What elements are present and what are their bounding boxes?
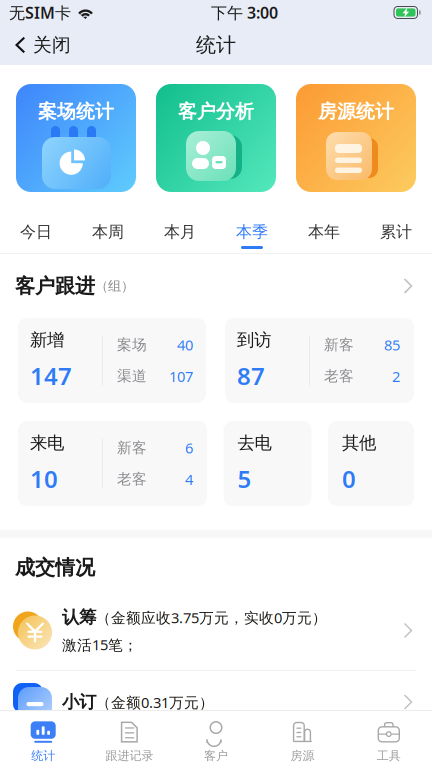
staticText: 107 — [169, 366, 193, 386]
staticText: 147 — [30, 360, 72, 392]
staticText: （金额0.31万元） — [96, 692, 214, 712]
button[interactable]: 本月 — [144, 205, 216, 253]
staticText: 10 — [30, 463, 58, 495]
staticText: 统计 — [196, 33, 236, 57]
button[interactable]: 客户跟进 — [0, 254, 432, 318]
button[interactable]: 认筹 — [0, 591, 432, 670]
staticText: 2 — [392, 366, 400, 386]
staticText: 客户跟进 — [15, 274, 95, 298]
button[interactable]: 本季 — [216, 205, 288, 253]
staticText: 本周 — [92, 222, 124, 242]
staticText: 房源统计 — [318, 100, 394, 123]
button[interactable]: 房源统计 — [296, 84, 416, 192]
button[interactable]: 案场统计 — [16, 84, 136, 192]
staticText: 87 — [237, 360, 265, 392]
staticText: 6 — [185, 438, 193, 457]
staticText: 本年 — [308, 222, 340, 242]
button[interactable]: 工具 — [346, 711, 432, 768]
button[interactable]: 今日 — [0, 205, 72, 253]
staticText: 今日 — [20, 222, 52, 242]
button[interactable]: 其他 — [328, 421, 414, 506]
staticText: 40 — [177, 335, 193, 354]
button[interactable]: 去电 — [223, 421, 311, 506]
button[interactable]: 累计 — [360, 205, 432, 253]
staticText: 认筹 — [62, 607, 96, 628]
button[interactable]: 来电 — [18, 421, 207, 506]
staticText: 其他 — [342, 432, 376, 454]
button[interactable]: 客户分析 — [156, 84, 276, 192]
button[interactable]: 本周 — [72, 205, 144, 253]
staticText: 成交情况 — [15, 555, 95, 580]
staticText: 激活15笔； — [62, 635, 138, 654]
staticText: 来电 — [30, 432, 64, 454]
staticText: 渠道 — [117, 367, 147, 385]
staticText: 85 — [384, 335, 400, 354]
button[interactable]: 统计 — [0, 711, 86, 768]
staticText: 房源 — [290, 748, 314, 763]
staticText: 5 — [237, 463, 251, 495]
button[interactable]: 关闭 — [0, 26, 71, 63]
staticText: （组） — [95, 278, 134, 294]
button[interactable]: 小订 — [0, 671, 432, 733]
button[interactable]: 房源 — [259, 711, 346, 768]
staticText: 案场统计 — [38, 100, 114, 123]
staticText: 新客 — [117, 439, 147, 457]
staticText: 工具 — [377, 748, 401, 763]
staticText: 关闭 — [33, 33, 71, 56]
staticText: 新增 — [30, 329, 64, 351]
button[interactable]: 本年 — [288, 205, 360, 253]
staticText: 去电 — [237, 432, 271, 454]
staticText: 客户分析 — [178, 100, 254, 123]
button[interactable]: 到访 — [225, 318, 414, 403]
staticText: 到访 — [237, 329, 271, 351]
button[interactable]: 客户 — [173, 711, 259, 768]
staticText: 累计 — [380, 222, 412, 242]
staticText: 老客 — [117, 470, 147, 488]
button[interactable]: 跟进记录 — [86, 711, 173, 768]
staticText: 跟进记录 — [106, 748, 154, 763]
staticText: 案场 — [117, 336, 147, 354]
staticText: 4 — [185, 469, 193, 489]
staticText: 下午 3:00 — [211, 2, 278, 23]
staticText: 小订 — [62, 691, 96, 713]
button[interactable]: 新增 — [18, 318, 206, 403]
staticText: 本月 — [164, 222, 196, 242]
staticText: 无SIM卡 — [9, 2, 71, 23]
staticText: （金额应收3.75万元，实收0万元） — [96, 608, 327, 627]
staticText: 本季 — [236, 222, 268, 242]
staticText: 新客 — [324, 336, 354, 354]
staticText: 客户 — [204, 748, 228, 763]
staticText: 0 — [342, 463, 356, 495]
staticText: 统计 — [31, 748, 55, 763]
staticText: 老客 — [324, 367, 354, 385]
